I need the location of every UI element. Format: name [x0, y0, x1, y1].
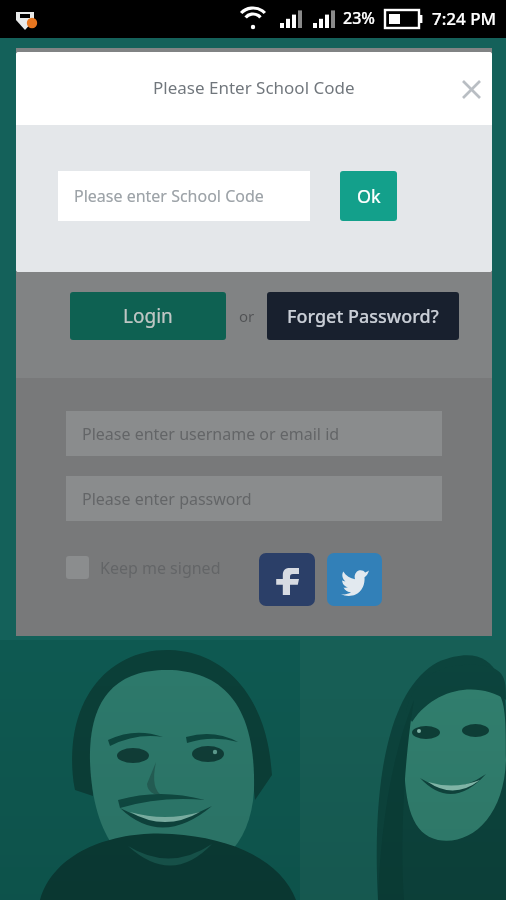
staticText: Login — [123, 303, 173, 329]
staticText: or — [239, 306, 255, 326]
staticText: Please Enter School Code — [153, 76, 355, 99]
button[interactable]: Sign in with Twitter — [327, 553, 382, 606]
staticText: Forget Password? — [287, 304, 439, 329]
button[interactable]: Login — [70, 292, 226, 340]
button[interactable]: Sign in with Facebook — [259, 553, 315, 606]
button[interactable]: Please enter password — [66, 476, 442, 521]
staticText: Ok — [357, 184, 381, 209]
staticText: 23% — [343, 7, 375, 29]
button[interactable]: Close — [449, 67, 492, 111]
staticText: Keep me signed — [100, 557, 221, 579]
button[interactable]: Ok — [340, 171, 397, 221]
staticText: Please enter School Code — [74, 185, 264, 207]
button[interactable]: Forget Password? — [267, 292, 459, 340]
button[interactable]: Please enter username or email id — [66, 411, 442, 456]
staticText: Please enter username or email id — [82, 423, 340, 445]
button[interactable]: Keep me signed — [66, 556, 221, 579]
staticText: 7:24 PM — [432, 7, 497, 30]
staticText: Please enter password — [82, 488, 252, 510]
button[interactable]: Please enter School Code — [58, 171, 310, 221]
